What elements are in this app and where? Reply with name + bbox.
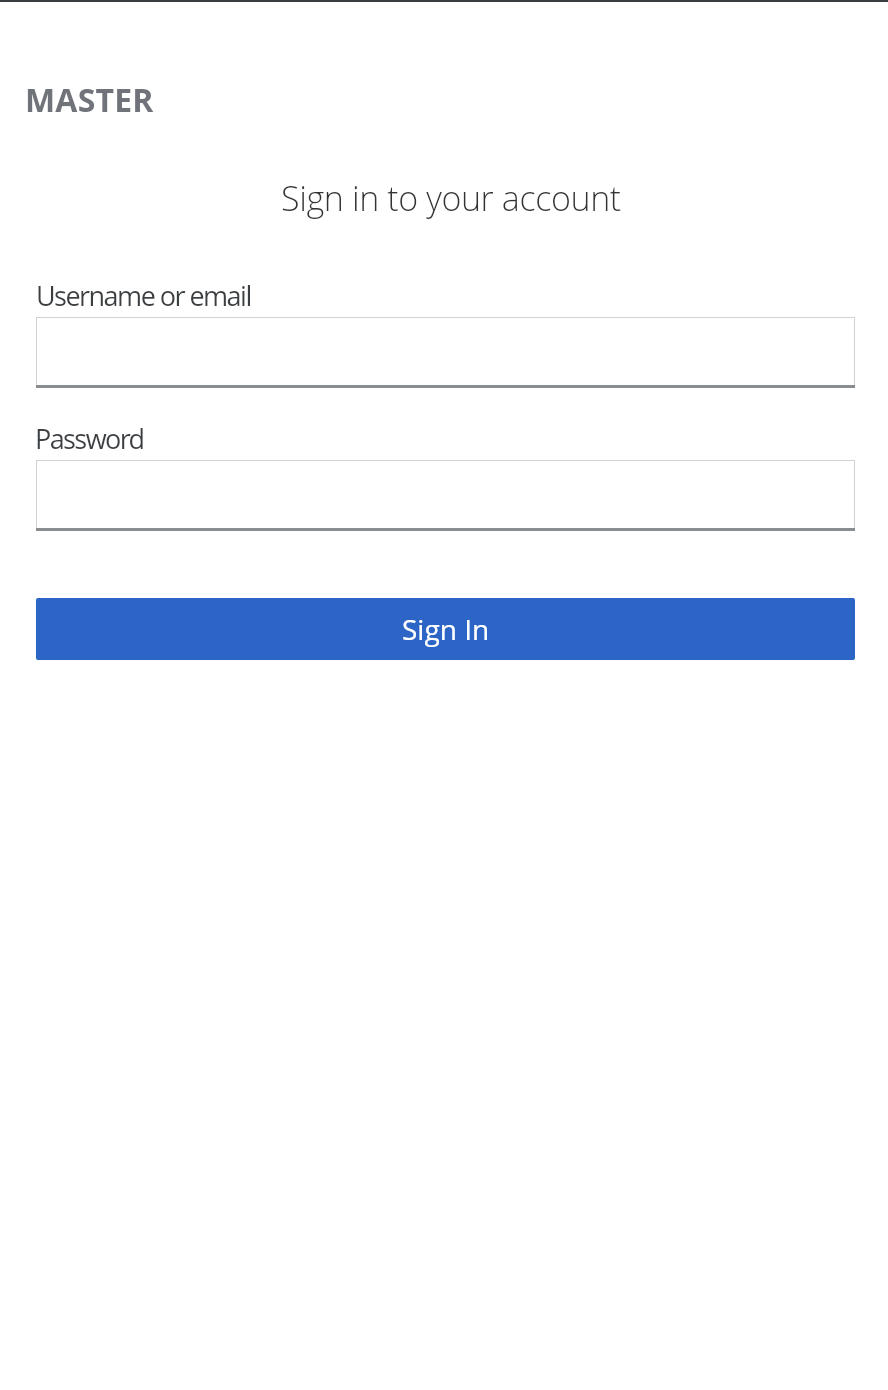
staticText: Sign In (402, 610, 490, 648)
button[interactable] (36, 317, 855, 388)
button[interactable] (36, 460, 855, 531)
staticText: Username or email (36, 277, 251, 314)
staticText: Password (35, 420, 144, 457)
button[interactable]: Sign In (36, 598, 855, 660)
staticText: Sign in to your account (281, 175, 621, 221)
staticText: MASTER (25, 78, 154, 122)
